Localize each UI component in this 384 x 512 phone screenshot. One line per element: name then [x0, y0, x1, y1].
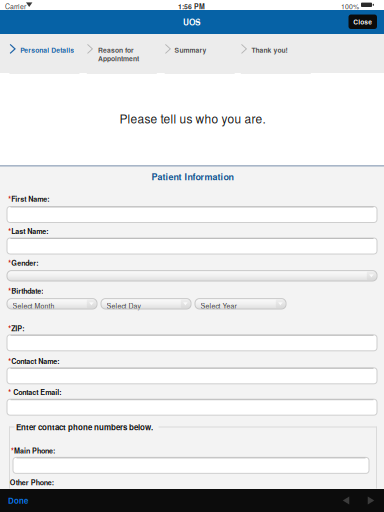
staticText: *	[8, 258, 11, 268]
staticText: Please tell us who you are.	[119, 110, 265, 127]
button[interactable]: Close	[348, 14, 377, 29]
staticText: Carrier	[5, 1, 26, 11]
button[interactable]	[13, 457, 369, 473]
staticText: Contact Name:	[11, 356, 59, 366]
staticText: Done	[8, 495, 28, 506]
staticText: Select Month	[13, 301, 55, 311]
staticText: Last Name:	[11, 226, 48, 236]
staticText: *	[11, 445, 14, 456]
button[interactable]: Personal Details	[9, 42, 79, 74]
button[interactable]: Summary	[165, 42, 235, 74]
staticText: Contact Email:	[13, 387, 61, 397]
staticText: *	[8, 226, 11, 236]
button[interactable]: Thank you!	[241, 42, 311, 74]
staticText: *	[8, 194, 11, 204]
button[interactable]: Next field	[360, 489, 382, 512]
staticText: ZIP:	[11, 323, 24, 333]
button[interactable]	[7, 271, 377, 281]
staticText: Personal Details	[20, 45, 74, 55]
staticText: Main Phone:	[14, 445, 55, 456]
button[interactable]	[7, 368, 377, 384]
staticText: Enter contact phone numbers below.	[16, 421, 153, 433]
staticText: Close	[353, 17, 372, 26]
staticText: UOS	[183, 16, 201, 28]
staticText: Appointment	[98, 53, 139, 63]
button[interactable]: Select Day	[101, 299, 191, 309]
staticText: 1:56 PM	[178, 1, 205, 11]
staticText: First Name:	[11, 194, 49, 204]
staticText: Summary	[174, 45, 206, 55]
button[interactable]: Done	[0, 489, 42, 512]
staticText: *	[8, 323, 11, 333]
staticText: *	[8, 387, 13, 397]
staticText: Patient Information	[151, 170, 233, 183]
button[interactable]	[7, 335, 377, 351]
staticText: *	[8, 286, 11, 296]
staticText: Gender:	[11, 258, 38, 268]
button[interactable]: Select Year	[195, 299, 286, 309]
staticText: Select Year	[201, 301, 237, 311]
button[interactable]: Reason for	[87, 42, 157, 74]
button[interactable]	[7, 206, 377, 222]
staticText: Thank you!	[251, 45, 287, 55]
button[interactable]	[7, 399, 377, 415]
staticText: *	[8, 356, 11, 366]
button[interactable]	[7, 238, 377, 254]
staticText: Birthdate:	[11, 286, 43, 296]
staticText: Other Phone:	[10, 477, 54, 487]
button[interactable]: Select Month	[7, 299, 97, 309]
staticText: Reason for	[98, 45, 134, 55]
staticText: 100%	[341, 1, 359, 11]
button[interactable]: Previous field	[335, 489, 357, 512]
staticText: Select Day	[107, 301, 141, 311]
